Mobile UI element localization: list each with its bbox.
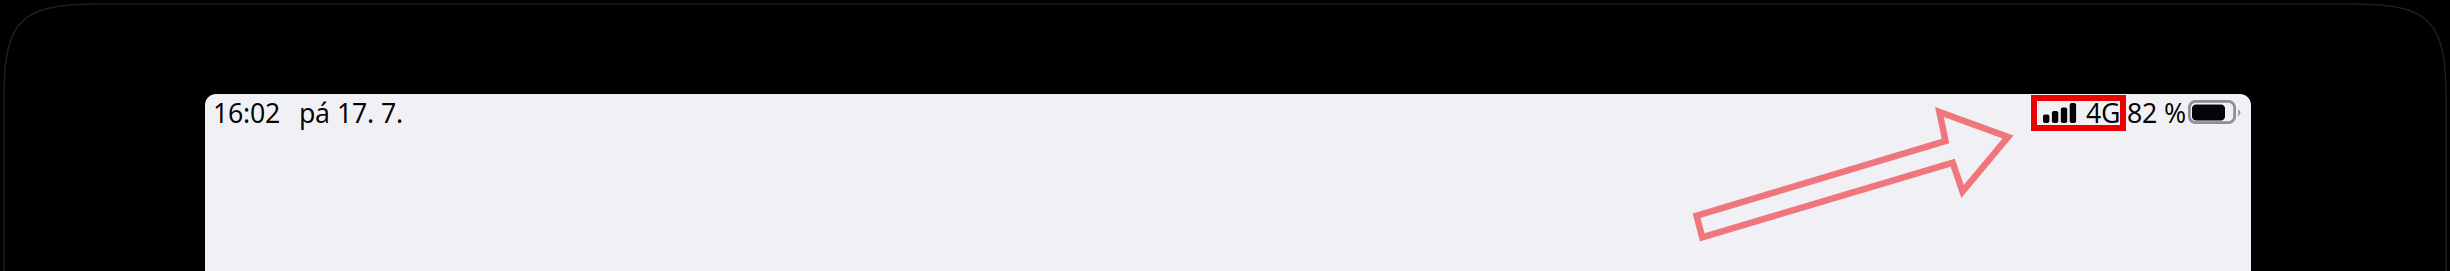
staticText: 4G — [2086, 95, 2120, 130]
staticText: pá 17. 7. — [299, 95, 403, 130]
staticText: 16:02 — [213, 95, 280, 130]
button[interactable]: Cellular 4G, battery 82 percent — [2031, 91, 2251, 135]
button[interactable]: 16:02 — [210, 91, 410, 127]
staticText: 82 % — [2127, 95, 2186, 130]
